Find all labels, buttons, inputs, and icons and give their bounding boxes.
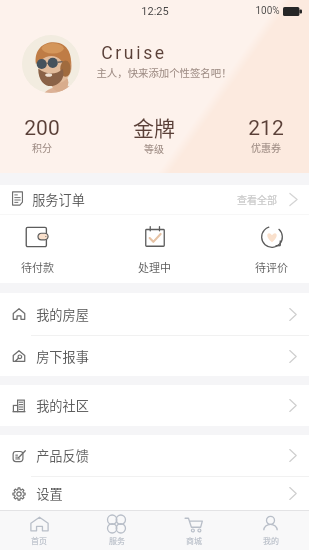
- staticText: 我的社区: [36, 396, 89, 415]
- staticText: 待付款: [21, 259, 54, 275]
- staticText: 金牌: [133, 112, 175, 142]
- button[interactable]: Profile photo: [22, 35, 80, 93]
- button[interactable]: 212: [248, 115, 284, 154]
- staticText: 设置: [36, 484, 63, 503]
- staticText: 商城: [186, 535, 202, 547]
- button[interactable]: 设置: [0, 477, 309, 510]
- button[interactable]: 金牌: [133, 115, 175, 159]
- button[interactable]: 我的: [232, 511, 309, 550]
- button[interactable]: 产品反馈: [0, 435, 309, 476]
- button[interactable]: 首页: [0, 511, 78, 550]
- staticText: 处理中: [138, 259, 171, 275]
- staticText: 200: [24, 116, 60, 141]
- button[interactable]: 我的房屋: [0, 293, 309, 335]
- button[interactable]: 处理中: [138, 226, 171, 275]
- staticText: 等级: [144, 141, 164, 155]
- staticText: 产品反馈: [36, 446, 89, 465]
- button[interactable]: 房下报事: [0, 336, 309, 376]
- button[interactable]: 待付款: [21, 226, 54, 275]
- staticText: 12:25: [141, 5, 169, 18]
- button[interactable]: 服务订单: [0, 185, 309, 214]
- staticText: 主人，快来添加个性签名吧！: [96, 65, 232, 80]
- staticText: 房下报事: [36, 347, 89, 366]
- staticText: Cruise: [101, 43, 167, 64]
- staticText: 积分: [32, 140, 52, 154]
- staticText: 查看全部: [237, 192, 277, 206]
- staticText: 212: [248, 116, 284, 141]
- staticText: 服务: [109, 535, 125, 547]
- staticText: 我的: [263, 535, 279, 547]
- button[interactable]: 服务: [78, 511, 155, 550]
- staticText: 待评价: [255, 259, 288, 275]
- staticText: 100%: [255, 5, 280, 17]
- staticText: 我的房屋: [36, 305, 89, 324]
- button[interactable]: 待评价: [255, 226, 288, 275]
- button[interactable]: 我的社区: [0, 385, 309, 426]
- staticText: 服务订单: [32, 190, 85, 209]
- staticText: 优惠券: [251, 140, 281, 154]
- button[interactable]: 200: [24, 115, 60, 154]
- staticText: 首页: [31, 535, 47, 547]
- button[interactable]: 商城: [155, 511, 232, 550]
